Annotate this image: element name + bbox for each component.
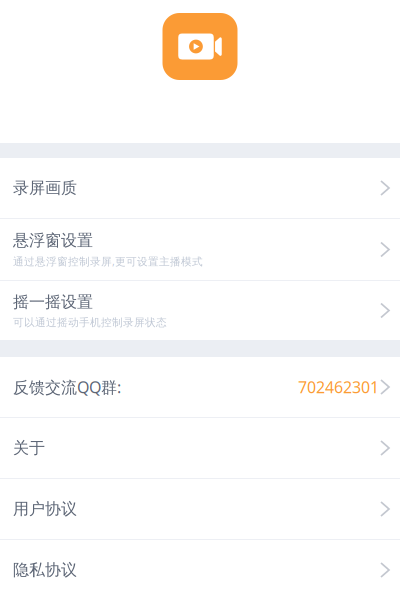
- staticText: 可以通过摇动手机控制录屏状态: [13, 316, 167, 329]
- staticText: 用户协议: [13, 499, 77, 519]
- button[interactable]: 反馈交流QQ群:: [0, 357, 400, 417]
- button[interactable]: 录屏画质: [0, 158, 400, 218]
- staticText: 关于: [13, 438, 45, 458]
- staticText: 录屏画质: [13, 178, 77, 198]
- staticText: 通过悬浮窗控制录屏,更可设置主播模式: [13, 254, 203, 268]
- staticText: 702462301: [298, 376, 379, 398]
- staticText: 反馈交流QQ群:: [13, 376, 121, 398]
- staticText: 悬浮窗设置: [13, 231, 93, 250]
- button[interactable]: 用户协议: [0, 479, 400, 539]
- button[interactable]: 悬浮窗设置: [0, 219, 400, 280]
- button[interactable]: 摇一摇设置: [0, 281, 400, 340]
- staticText: 摇一摇设置: [13, 292, 93, 312]
- staticText: 隐私协议: [13, 560, 77, 580]
- button[interactable]: 关于: [0, 418, 400, 478]
- button[interactable]: 隐私协议: [0, 540, 400, 590]
